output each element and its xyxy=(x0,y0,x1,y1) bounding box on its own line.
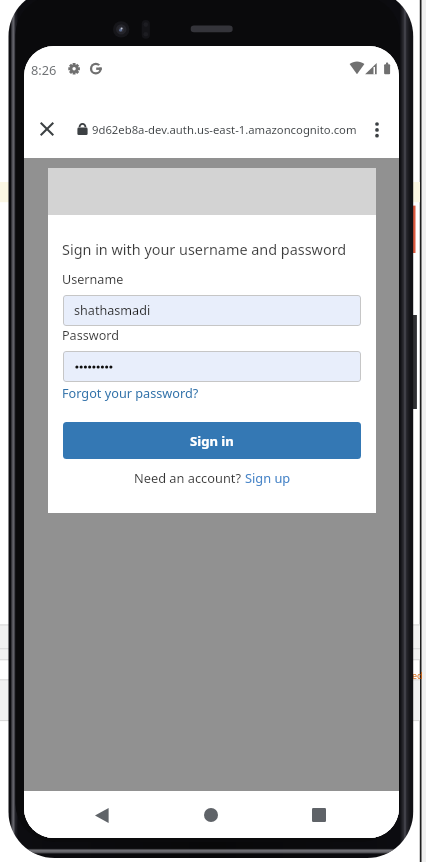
staticText: Sign up xyxy=(245,469,291,486)
button[interactable]: Close tab xyxy=(35,117,59,141)
button[interactable]: Recent apps xyxy=(283,791,355,838)
button[interactable]: Sign in xyxy=(63,422,361,459)
button[interactable]: Forgot your password? xyxy=(62,384,199,401)
staticText: shathasmadi xyxy=(74,302,151,319)
button[interactable]: More options xyxy=(365,116,389,140)
button[interactable]: Back xyxy=(66,791,138,838)
button[interactable]: Home xyxy=(175,791,247,838)
staticText: Password xyxy=(62,327,119,344)
staticText: Sign in with your username and password xyxy=(62,240,347,260)
staticText: Sign in xyxy=(190,432,234,450)
staticText: 9d62eb8a-dev.auth.us-east-1.amazoncognit… xyxy=(92,122,357,137)
button[interactable] xyxy=(63,351,361,382)
staticText: Username xyxy=(62,271,124,288)
staticText: 8:26 xyxy=(31,61,57,78)
button[interactable]: shathasmadi xyxy=(63,295,361,326)
staticText: ed xyxy=(412,669,423,681)
staticText: Forgot your password? xyxy=(62,384,199,401)
staticText: Need an account? xyxy=(134,469,245,486)
button[interactable]: Sign up xyxy=(245,469,291,486)
